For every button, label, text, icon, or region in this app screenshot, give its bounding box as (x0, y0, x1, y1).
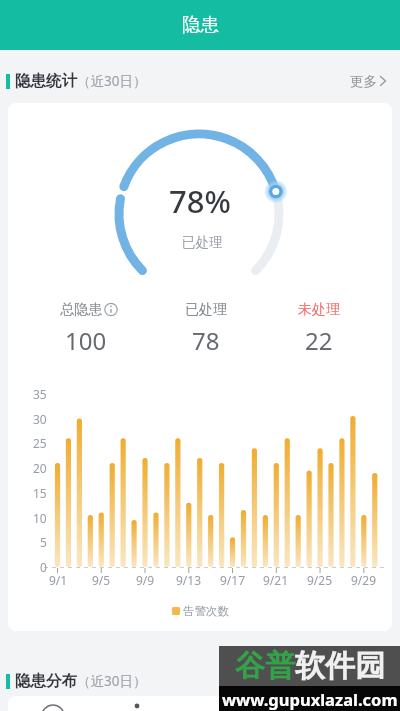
staticText: 谷普 (235, 647, 295, 685)
staticText: 隐患 (182, 13, 219, 36)
staticText: 22 (305, 324, 333, 357)
staticText: 未处理 (298, 301, 340, 319)
staticText: （近30日） (77, 72, 147, 90)
staticText: 已处理 (182, 234, 223, 251)
staticText: 10 (33, 510, 47, 526)
button[interactable]: 更多 (350, 66, 386, 96)
staticText: 9/21 (263, 572, 289, 588)
staticText: 30 (33, 411, 47, 427)
staticText: 隐患分布 (15, 671, 77, 691)
button[interactable] (101, 299, 122, 320)
staticText: 5 (40, 534, 47, 550)
staticText: 35 (33, 386, 47, 402)
staticText: 100 (65, 324, 107, 357)
staticText: 15 (33, 485, 47, 501)
staticText: 9/1 (49, 572, 68, 588)
staticText: 总隐患 (60, 301, 102, 319)
staticText: 更多 (350, 73, 377, 90)
staticText: 软件园 (295, 647, 385, 685)
staticText: 9/17 (220, 572, 246, 588)
staticText: （近30日） (77, 672, 147, 690)
staticText: 25 (33, 435, 47, 451)
staticText: 9/29 (351, 572, 377, 588)
staticText: 告警次数 (183, 604, 229, 618)
staticText: 9/9 (136, 572, 155, 588)
staticText: 20 (33, 460, 47, 476)
staticText: 已处理 (185, 301, 227, 319)
staticText: 78 (192, 324, 220, 357)
staticText: 0 (40, 559, 47, 575)
staticText: 9/25 (307, 572, 333, 588)
staticText: 9/5 (92, 572, 111, 588)
staticText: 78% (169, 180, 231, 220)
staticText: 隐患统计 (15, 71, 77, 91)
staticText: 9/13 (176, 572, 202, 588)
staticText: www.gupuxlazal.com (222, 688, 398, 710)
